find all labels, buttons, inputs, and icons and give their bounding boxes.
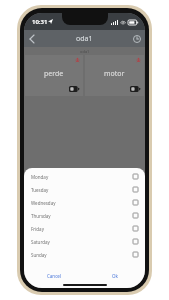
- staticText: Tuesday: [31, 187, 133, 193]
- button[interactable]: Sunday: [24, 248, 145, 261]
- button[interactable]: Saturday: [24, 235, 145, 248]
- staticText: Monday: [31, 174, 133, 180]
- button[interactable]: Monday: [24, 170, 145, 183]
- button[interactable]: Toggle: [69, 86, 79, 92]
- staticText: Friday: [31, 226, 133, 232]
- staticText: Ok: [112, 273, 118, 279]
- staticText: Sunday: [31, 252, 133, 258]
- staticText: Saturday: [31, 239, 133, 245]
- staticText: oda1: [76, 34, 93, 44]
- button[interactable]: Wednesday: [24, 196, 145, 209]
- button[interactable]: Info: [129, 31, 145, 47]
- staticText: 10:31: [32, 18, 48, 26]
- staticText: Wednesday: [31, 200, 133, 206]
- button[interactable]: Toggle: [130, 86, 140, 92]
- button[interactable]: Back: [24, 31, 40, 47]
- staticText: Thursday: [31, 213, 133, 219]
- button[interactable]: Tuesday: [24, 183, 145, 196]
- staticText: Cancel: [47, 273, 62, 279]
- staticText: motor: [104, 69, 125, 79]
- button[interactable]: Friday: [24, 222, 145, 235]
- button[interactable]: Ok: [84, 271, 145, 281]
- button[interactable]: motor: [85, 55, 144, 96]
- button[interactable]: perde: [25, 55, 83, 96]
- staticText: oda1: [80, 49, 90, 54]
- staticText: perde: [44, 69, 64, 79]
- button[interactable]: Thursday: [24, 209, 145, 222]
- button[interactable]: Cancel: [24, 271, 84, 281]
